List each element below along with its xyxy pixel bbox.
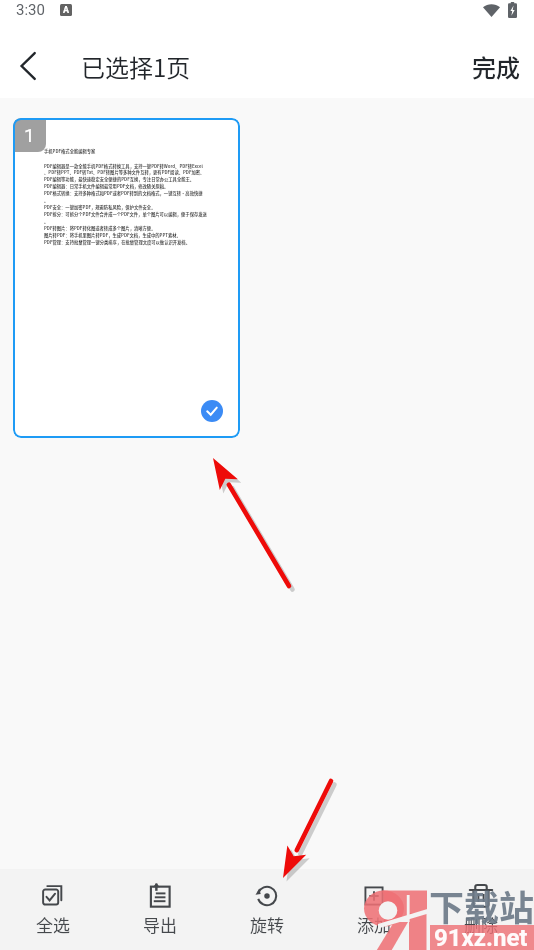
staticText: 删除 — [464, 912, 498, 937]
staticText: 91xz.net — [434, 924, 528, 950]
staticText: 完成 — [472, 49, 520, 84]
staticText: 添加 — [357, 912, 391, 937]
staticText: 旋转 — [250, 912, 284, 937]
button[interactable]: 手机PDF格式全能编辑专家 — [13, 118, 240, 438]
staticText: 1 — [24, 124, 35, 146]
staticText: 全选 — [36, 912, 70, 937]
staticText: 手机PDF格式全能编辑专家 — [44, 148, 96, 154]
button[interactable]: 完成 — [458, 39, 534, 94]
other: Selected — [201, 400, 223, 422]
staticText: A — [63, 5, 70, 16]
staticText: 导出 — [143, 912, 177, 937]
button[interactable]: 删除 — [427, 871, 534, 949]
staticText: 已选择1页 — [81, 49, 191, 84]
staticText: PDF编辑器是一款全能手机PDF格式转换工具，支持一键PDF转Word、PDF转… — [44, 163, 207, 246]
button[interactable]: 导出 — [106, 871, 213, 949]
button[interactable]: 全选 — [0, 871, 106, 949]
button[interactable]: 添加 — [320, 871, 427, 949]
staticText: 3:30 — [16, 1, 45, 19]
staticText: 下载站 — [429, 880, 534, 931]
button[interactable]: Back — [4, 42, 52, 90]
button[interactable]: 旋转 — [213, 871, 320, 949]
